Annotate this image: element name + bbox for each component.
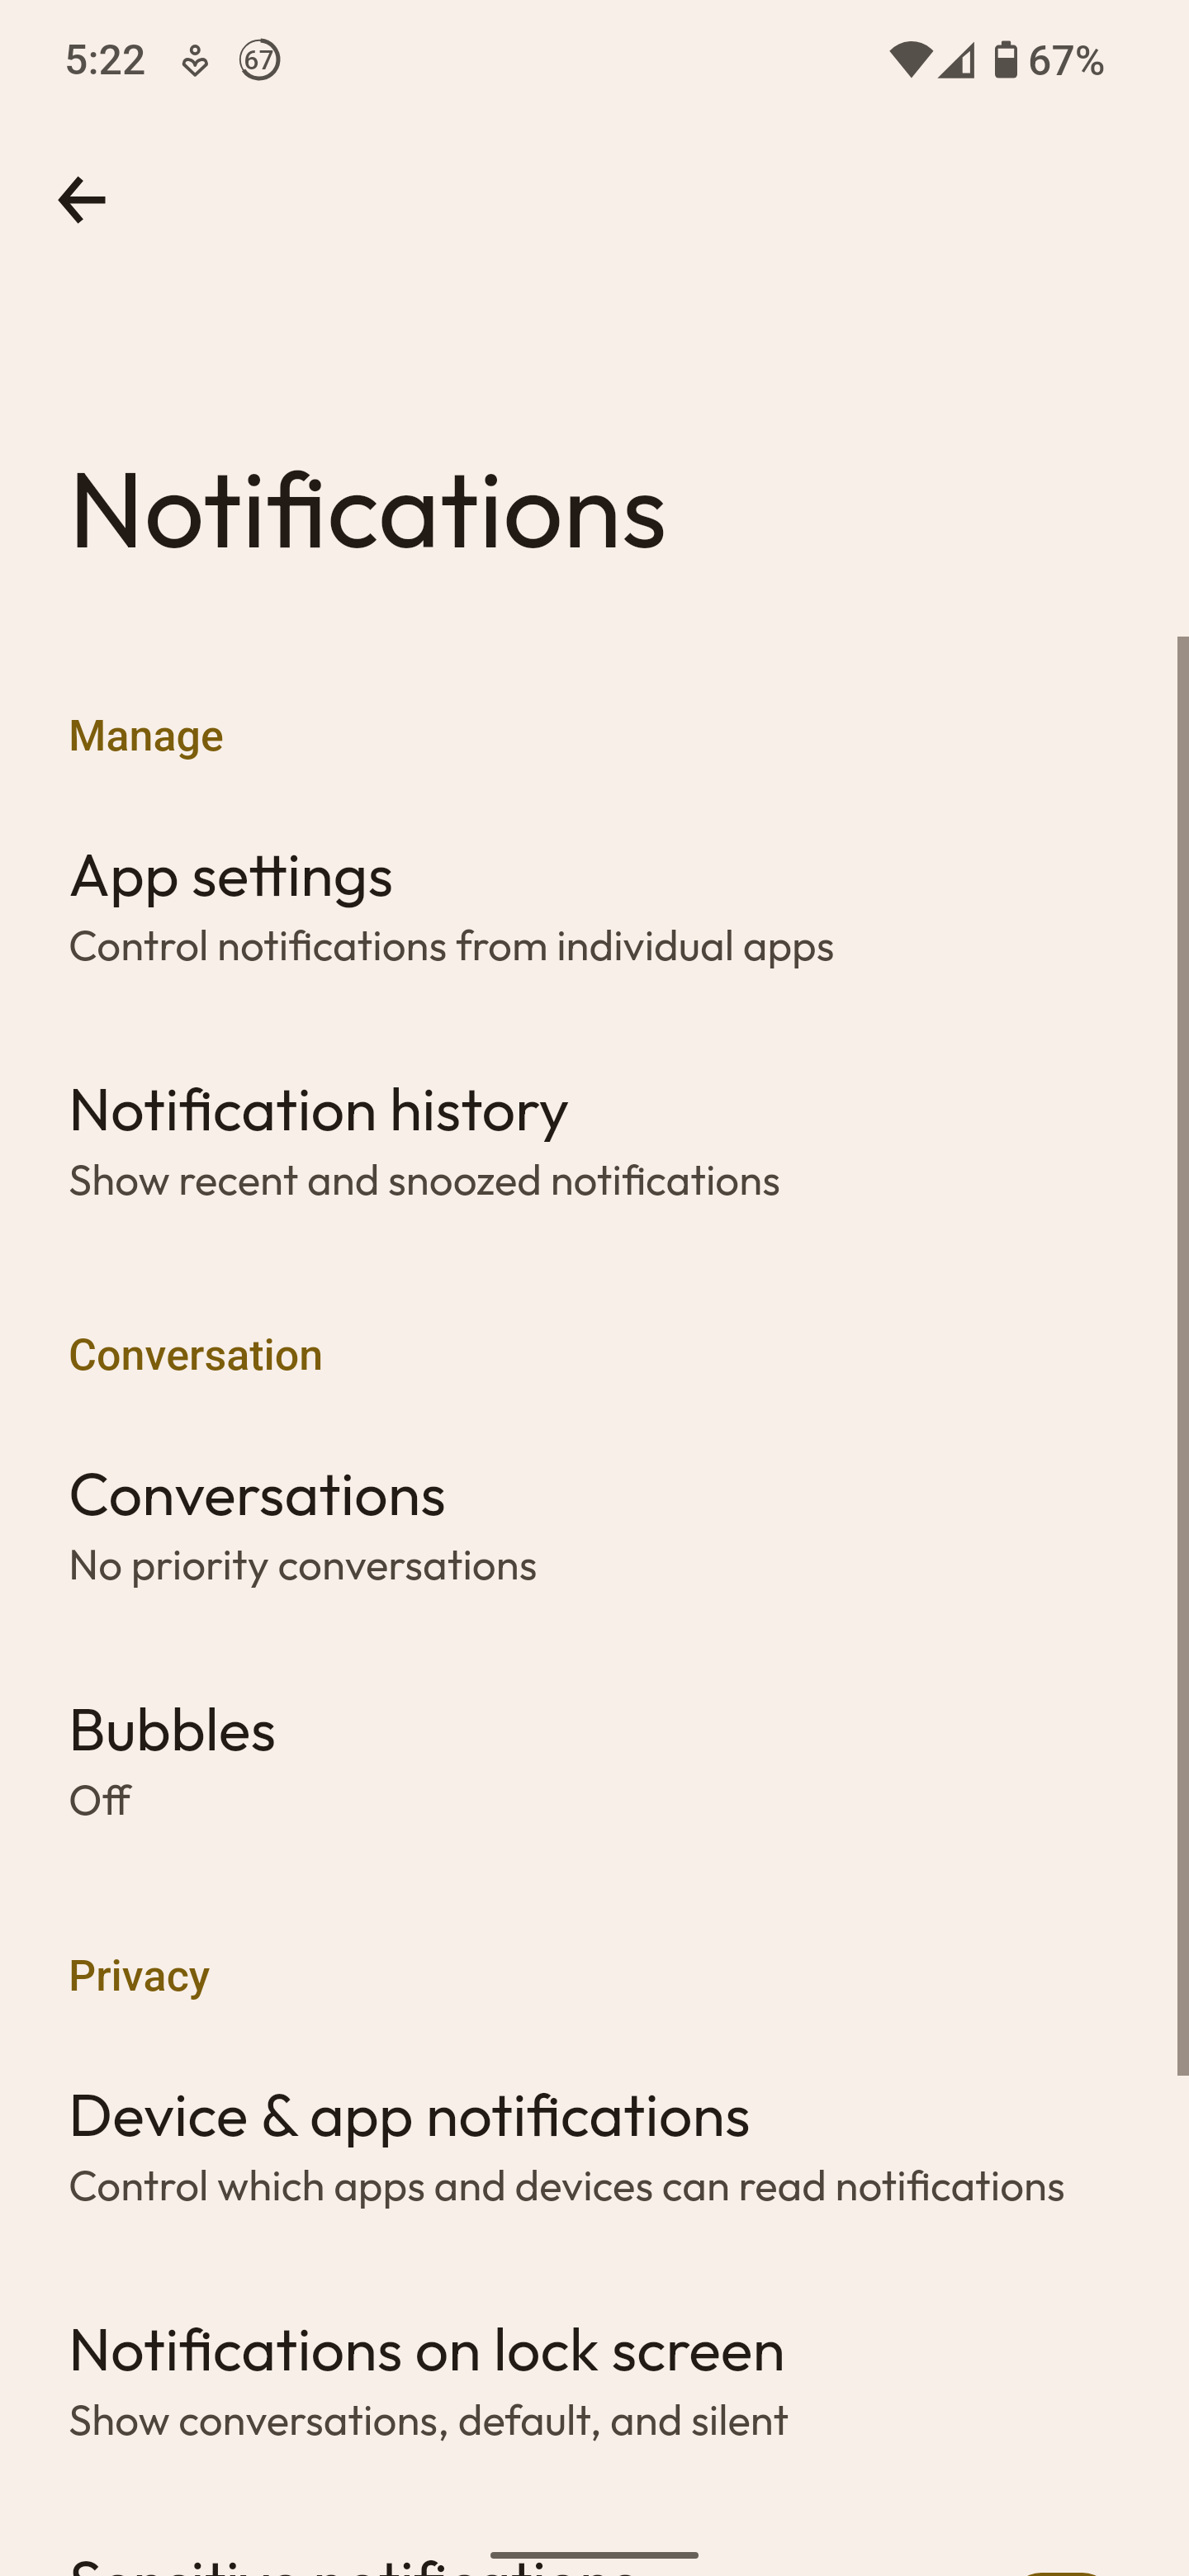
staticText: Notifications on lock screen xyxy=(69,2311,785,2386)
staticText: Notifications xyxy=(69,441,667,575)
staticText: Manage xyxy=(69,711,224,761)
button[interactable]: App settings xyxy=(0,803,1189,1002)
staticText: Conversations xyxy=(69,1456,446,1531)
button[interactable]: Navigate up xyxy=(21,154,114,246)
staticText: Bubbles xyxy=(69,1691,277,1766)
staticText: 67% xyxy=(1028,37,1106,86)
staticText: Privacy xyxy=(69,1951,211,2001)
staticText: Show recent and snoozed notifications xyxy=(69,1153,780,1205)
staticText: Show conversations, default, and silent xyxy=(69,2393,789,2446)
staticText: Device & app notifications xyxy=(69,2076,751,2152)
button[interactable]: Sensitive notifications xyxy=(0,2510,1189,2576)
staticText: Control notifications from individual ap… xyxy=(69,918,835,971)
button[interactable]: Conversations xyxy=(0,1423,1189,1621)
button[interactable]: Notifications on lock screen xyxy=(0,2278,1189,2476)
staticText: Sensitive notifications xyxy=(69,2544,637,2576)
staticText: Off xyxy=(69,1773,131,1825)
staticText: Control which apps and devices can read … xyxy=(69,2158,1065,2211)
staticText: Notification history xyxy=(69,1071,570,1146)
staticText: Conversation xyxy=(69,1330,324,1380)
button[interactable]: Toggle sensitive notifications xyxy=(1011,2573,1113,2576)
button[interactable]: Bubbles xyxy=(0,1658,1189,1856)
staticText: App settings xyxy=(69,836,394,912)
button[interactable]: Device & app notifications xyxy=(0,2043,1189,2242)
staticText: No priority conversations xyxy=(69,1537,538,1590)
button[interactable]: Notification history xyxy=(0,1038,1189,1236)
staticText: 67 xyxy=(243,45,275,76)
staticText: 5:22 xyxy=(64,36,146,85)
